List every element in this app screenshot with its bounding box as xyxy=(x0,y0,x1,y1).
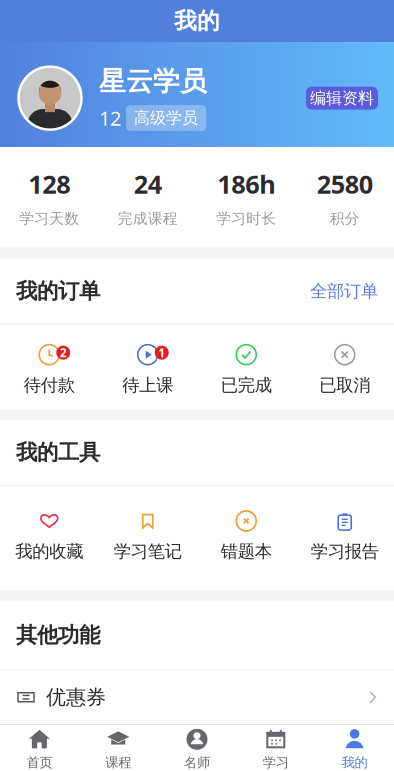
staticText: 128 xyxy=(28,167,70,201)
staticText: 错题本 xyxy=(221,541,272,562)
staticText: 学习报告 xyxy=(311,541,379,562)
staticText: 完成课程 xyxy=(118,210,178,228)
staticText: 待上课 xyxy=(122,375,173,396)
staticText: 积分 xyxy=(330,210,360,228)
staticText: 24 xyxy=(134,167,162,201)
staticText: 其他功能 xyxy=(16,622,100,648)
button[interactable]: 已完成 xyxy=(197,344,295,396)
staticText: 我的工具 xyxy=(16,439,100,465)
button[interactable]: 学习报告 xyxy=(295,510,394,562)
staticText: 星云学员 xyxy=(99,65,207,98)
button[interactable]: 已取消 xyxy=(295,344,394,396)
staticText: 已完成 xyxy=(221,375,272,396)
staticText: 我的订单 xyxy=(16,278,100,304)
staticText: 名师 xyxy=(184,754,210,771)
staticText: 已取消 xyxy=(319,375,370,396)
staticText: 首页 xyxy=(26,754,52,771)
staticText: 课程 xyxy=(105,754,131,771)
staticText: 2 xyxy=(60,345,67,361)
staticText: 1 xyxy=(158,345,165,361)
button[interactable]: 首页 xyxy=(0,720,79,771)
staticText: 优惠券 xyxy=(46,685,106,710)
button[interactable]: 我的收藏 xyxy=(0,510,98,562)
button[interactable]: 学习 xyxy=(236,720,315,771)
button[interactable]: 我的 xyxy=(315,720,394,771)
staticText: 12 xyxy=(99,105,121,131)
staticText: 我的收藏 xyxy=(15,541,83,562)
button[interactable]: 2 xyxy=(0,344,98,396)
staticText: 待付款 xyxy=(24,375,75,396)
staticText: 高级学员 xyxy=(134,108,198,128)
staticText: 186h xyxy=(217,167,275,201)
staticText: 学习天数 xyxy=(19,210,79,228)
staticText: 我的 xyxy=(174,7,220,35)
button[interactable]: 全部订单 xyxy=(310,280,378,302)
button[interactable]: 1 xyxy=(98,344,197,396)
staticText: 学习笔记 xyxy=(114,541,182,562)
button[interactable]: 错题本 xyxy=(197,510,295,562)
staticText: 编辑资料 xyxy=(310,88,374,108)
button[interactable]: 编辑资料 xyxy=(306,87,378,110)
staticText: 全部订单 xyxy=(310,280,378,302)
button[interactable]: 课程 xyxy=(79,720,158,771)
button[interactable]: 优惠券 xyxy=(0,670,394,724)
staticText: 学习 xyxy=(263,754,289,771)
staticText: 学习时长 xyxy=(216,210,276,228)
staticText: 2580 xyxy=(317,167,373,201)
staticText: 我的 xyxy=(342,754,368,771)
button[interactable]: Avatar xyxy=(18,66,82,130)
button[interactable]: 名师 xyxy=(158,720,236,771)
button[interactable]: 学习笔记 xyxy=(98,510,197,562)
